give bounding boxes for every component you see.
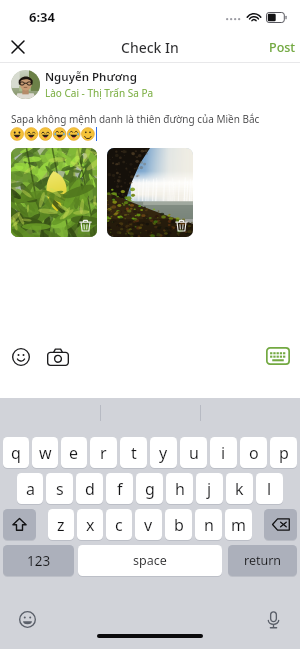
button[interactable]: v <box>135 509 162 540</box>
button[interactable]: g <box>136 473 163 504</box>
button[interactable]: d <box>76 473 103 504</box>
staticText: u <box>189 442 199 464</box>
button[interactable]: q <box>3 437 29 468</box>
button[interactable]: c <box>106 509 132 540</box>
button[interactable]: p <box>270 437 297 468</box>
staticText: n <box>204 514 214 536</box>
staticText: l <box>267 478 272 500</box>
button[interactable]: m <box>225 509 252 540</box>
staticText: return <box>244 552 282 569</box>
staticText: h <box>175 478 185 500</box>
staticText: Post <box>269 39 296 56</box>
button[interactable]: b <box>165 509 192 540</box>
staticText: 123 <box>27 552 51 570</box>
button[interactable]: t <box>120 437 147 468</box>
button[interactable]: Emoji <box>8 344 33 369</box>
button[interactable]: l <box>256 473 283 504</box>
button[interactable]: s <box>46 473 73 504</box>
button[interactable]: Delete photo <box>79 219 92 232</box>
button[interactable]: Camera <box>44 343 71 370</box>
staticText: Check In <box>121 38 179 57</box>
button[interactable]: u <box>180 437 207 468</box>
staticText: p <box>279 442 289 464</box>
staticText: j <box>207 478 212 500</box>
button[interactable]: return <box>228 545 297 576</box>
button[interactable]: e <box>61 437 87 468</box>
button[interactable]: j <box>196 473 223 504</box>
staticText: Sapa không mệnh danh là thiên đường của … <box>11 112 260 126</box>
staticText: Lào Cai - Thị Trấn Sa Pa <box>45 86 154 100</box>
staticText: y <box>159 442 168 464</box>
button[interactable]: 123 <box>3 545 74 576</box>
button[interactable]: y <box>150 437 177 468</box>
staticText: q <box>11 442 21 464</box>
button[interactable]: o <box>240 437 267 468</box>
button[interactable]: Post <box>246 32 300 62</box>
button[interactable]: r <box>90 437 117 468</box>
staticText: k <box>235 478 244 500</box>
staticText: b <box>174 514 184 536</box>
button[interactable]: a <box>17 473 43 504</box>
button[interactable]: Dictation <box>262 609 284 631</box>
button[interactable]: z <box>48 509 74 540</box>
staticText: v <box>144 514 153 536</box>
staticText: o <box>249 442 259 464</box>
staticText: a <box>26 478 35 500</box>
staticText: g <box>145 478 155 500</box>
button[interactable]: w <box>32 437 58 468</box>
staticText: Nguyễn Phương <box>45 69 137 85</box>
staticText: d <box>85 478 95 500</box>
button[interactable]: Delete photo <box>107 148 193 237</box>
staticText: x <box>86 514 95 536</box>
button[interactable]: space <box>78 545 222 576</box>
button[interactable]: Close <box>0 32 36 62</box>
button[interactable]: f <box>106 473 133 504</box>
staticText: c <box>115 514 123 536</box>
staticText: i <box>221 442 226 464</box>
staticText: space <box>133 552 167 569</box>
button[interactable]: i <box>210 437 237 468</box>
button[interactable]: n <box>195 509 222 540</box>
button[interactable]: Delete photo <box>11 148 97 237</box>
staticText: e <box>69 442 79 464</box>
staticText: f <box>117 478 123 500</box>
button[interactable]: Delete photo <box>175 219 188 232</box>
button[interactable]: x <box>77 509 103 540</box>
staticText: s <box>56 478 64 500</box>
button[interactable]: Shift <box>3 509 36 540</box>
staticText: m <box>231 514 246 536</box>
staticText: z <box>57 514 65 536</box>
button[interactable]: Keyboard <box>265 343 291 369</box>
button[interactable]: k <box>226 473 253 504</box>
staticText: t <box>131 442 137 464</box>
button[interactable]: Emoji keyboard <box>16 608 38 630</box>
staticText: r <box>100 442 107 464</box>
button[interactable]: Backspace <box>264 509 297 540</box>
staticText: 6:34 <box>29 8 55 26</box>
button[interactable]: h <box>166 473 193 504</box>
staticText: w <box>39 442 52 464</box>
